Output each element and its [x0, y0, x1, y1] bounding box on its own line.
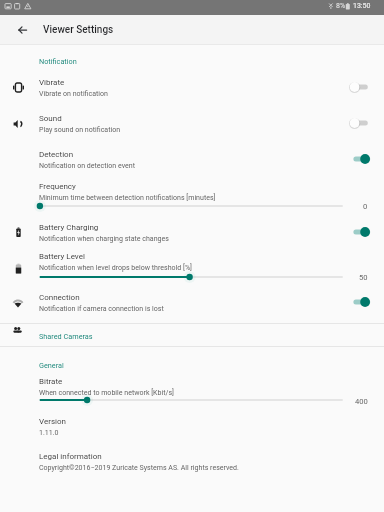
staticText: Notification when level drops below thre…: [39, 263, 192, 271]
button[interactable]: [0, 140, 384, 174]
staticText: Vibrate: [39, 78, 65, 87]
button[interactable]: [0, 216, 384, 248]
staticText: Minimum time between detection notificat…: [39, 193, 216, 201]
button[interactable]: [0, 412, 384, 438]
staticText: Battery Level: [39, 252, 85, 261]
button[interactable]: [0, 372, 384, 410]
staticText: Notification: [39, 57, 77, 66]
button[interactable]: [0, 104, 384, 139]
staticText: Viewer Settings: [43, 24, 114, 36]
staticText: Copyright©2016−2019 Zuricate Systems AS.…: [39, 463, 239, 471]
button[interactable]: Back: [8, 15, 37, 44]
staticText: Vibrate on notification: [39, 89, 108, 97]
button[interactable]: Toggle on: [346, 147, 378, 171]
staticText: 400: [355, 397, 368, 406]
staticText: Connection: [39, 293, 80, 302]
button[interactable]: Toggle on: [346, 220, 378, 244]
staticText: 0: [363, 202, 368, 211]
button[interactable]: [0, 176, 384, 214]
staticText: Version: [39, 417, 66, 426]
staticText: Battery Charging: [39, 223, 99, 232]
staticText: 1.11.0: [39, 428, 59, 436]
staticText: Shared Cameras: [39, 332, 93, 341]
staticText: When connected to mobile network [Kbit/s…: [39, 388, 174, 396]
staticText: Play sound on notification: [39, 125, 121, 133]
staticText: General: [39, 361, 64, 370]
button[interactable]: Toggle off: [346, 75, 378, 99]
staticText: 50: [359, 273, 368, 282]
button[interactable]: [0, 248, 384, 286]
staticText: 8%: [336, 2, 346, 10]
staticText: Notification if camera connection is los…: [39, 304, 164, 312]
staticText: Sound: [39, 114, 62, 123]
button[interactable]: Toggle off: [346, 111, 378, 135]
staticText: Legal information: [39, 452, 102, 461]
button[interactable]: [0, 288, 384, 322]
button[interactable]: Toggle on: [346, 290, 378, 314]
staticText: Detection: [39, 150, 74, 159]
staticText: 13:50: [353, 2, 371, 10]
button[interactable]: [0, 446, 384, 476]
button[interactable]: [0, 68, 384, 104]
staticText: Bitrate: [39, 377, 63, 386]
button[interactable]: Shared Cameras: [0, 324, 384, 346]
staticText: Frequency: [39, 182, 76, 191]
staticText: Notification on detection event: [39, 161, 135, 169]
staticText: Notification when charging state changes: [39, 234, 169, 242]
